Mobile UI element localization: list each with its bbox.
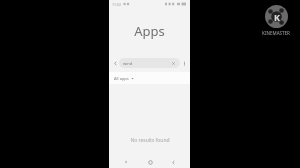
button[interactable]: All apps xyxy=(113,75,135,82)
staticText: Apps xyxy=(134,22,165,40)
staticText: wind xyxy=(123,61,133,66)
button[interactable]: Home xyxy=(143,156,157,168)
button[interactable]: wind xyxy=(119,58,180,68)
staticText: All apps xyxy=(114,76,129,81)
staticText: No results found xyxy=(130,137,170,144)
staticText: K xyxy=(274,11,280,23)
button[interactable]: More options xyxy=(180,59,188,67)
staticText: 11:02 xyxy=(112,2,121,7)
button[interactable]: Back xyxy=(111,59,119,67)
button[interactable]: Recent apps xyxy=(119,156,133,168)
button[interactable]: Back xyxy=(166,156,180,168)
staticText: KINEMASTER xyxy=(262,30,290,36)
button[interactable]: Clear search xyxy=(170,60,176,66)
